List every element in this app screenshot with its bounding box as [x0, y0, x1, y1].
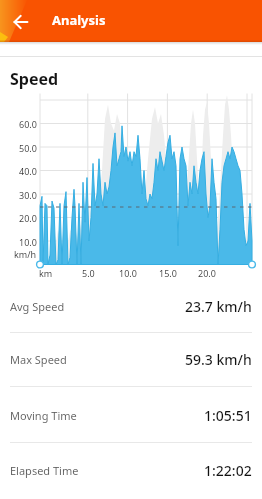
staticText: 1:22:02	[204, 461, 252, 480]
staticText: 23.7 km/h	[185, 297, 252, 316]
staticText: 10.0	[19, 236, 37, 248]
button[interactable]: Moving Time	[0, 388, 262, 442]
staticText: Moving Time	[10, 408, 77, 423]
staticText: 1:05:51	[204, 406, 252, 425]
staticText: 60.0	[19, 118, 37, 130]
staticText: 20.0	[198, 267, 216, 279]
button[interactable]	[2, 3, 39, 40]
staticText: 20.0	[19, 212, 37, 224]
staticText: 10.0	[119, 267, 137, 279]
staticText: Speed	[10, 68, 59, 90]
staticText: Elapsed Time	[10, 463, 79, 478]
staticText: 50.0	[19, 142, 37, 154]
staticText: 15.0	[159, 267, 177, 279]
staticText: Analysis	[52, 11, 106, 29]
staticText: km/h	[14, 248, 37, 260]
staticText: Avg Speed	[10, 299, 65, 314]
button[interactable]: Avg Speed	[0, 280, 262, 332]
staticText: km	[39, 267, 53, 279]
staticText: 30.0	[19, 189, 37, 201]
staticText: 5.0	[82, 267, 95, 279]
staticText: Max Speed	[10, 352, 67, 367]
button[interactable]: Max Speed	[0, 333, 262, 386]
staticText: 40.0	[19, 165, 37, 177]
button[interactable]: Elapsed Time	[0, 443, 262, 497]
staticText: 59.3 km/h	[185, 350, 252, 369]
